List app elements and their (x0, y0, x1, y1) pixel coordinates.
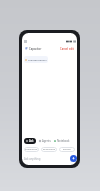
staticText: Brainstorm (43, 148, 56, 151)
button[interactable]: Summarize (24, 147, 39, 152)
staticText: Capacitor (29, 47, 42, 51)
button[interactable]: Cancel edit (60, 47, 74, 51)
staticText: Cancel edit (60, 47, 74, 51)
button[interactable]: Send (70, 155, 77, 162)
staticText: Notebook (57, 139, 70, 143)
button[interactable]: Agents (39, 139, 51, 143)
other: Menu (25, 47, 28, 50)
staticText: Ask (29, 139, 34, 143)
button[interactable]: Ask (24, 138, 36, 144)
button[interactable]: Brainstorm (41, 147, 57, 152)
staticText: Explain (63, 148, 71, 151)
staticText: charged battery (28, 58, 47, 61)
button[interactable]: Notebook (54, 139, 70, 143)
staticText: Agents (42, 139, 51, 143)
button[interactable]: Explain (59, 147, 75, 152)
staticText: Summarize (25, 148, 38, 151)
staticText: Ask anything (24, 157, 41, 161)
